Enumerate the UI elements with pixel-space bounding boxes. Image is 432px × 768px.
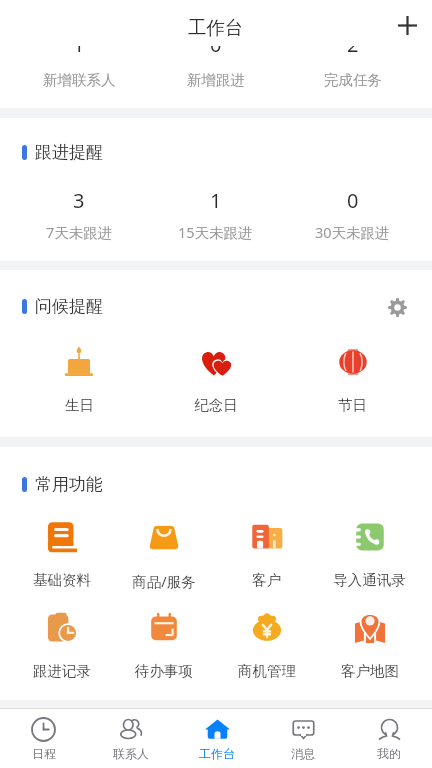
staticText: 商机管理 (238, 662, 296, 680)
button[interactable]: 待办事项 (113, 612, 215, 680)
button[interactable]: 3 (11, 187, 147, 242)
button[interactable]: 设置 (380, 290, 414, 324)
staticText: 生日 (65, 396, 94, 414)
button[interactable]: 1 (147, 187, 284, 242)
staticText: 1 (210, 187, 222, 214)
staticText: 消息 (291, 746, 315, 761)
staticText: 客户地图 (341, 662, 399, 680)
staticText: 商品/服务 (132, 571, 196, 591)
button[interactable]: 联系人 (87, 709, 174, 768)
staticText: 常用功能 (35, 474, 103, 495)
staticText: 0 (347, 187, 359, 214)
staticText: 跟进提醒 (35, 142, 103, 163)
staticText: 新增跟进 (187, 71, 245, 89)
button[interactable]: 导入通讯录 (318, 521, 421, 589)
button[interactable]: 跟进记录 (11, 612, 113, 680)
staticText: 跟进记录 (33, 662, 91, 680)
staticText: 客户 (252, 571, 281, 589)
button[interactable]: 日程 (0, 709, 87, 768)
button[interactable]: 1 (11, 46, 147, 89)
staticText: 新增联系人 (43, 71, 116, 89)
button[interactable]: 2 (284, 46, 421, 89)
button[interactable]: 新增 (389, 5, 425, 41)
button[interactable]: 生日 (11, 346, 147, 414)
button[interactable]: 客户 (215, 521, 318, 589)
staticText: 15天未跟进 (178, 222, 253, 242)
staticText: 7天未跟进 (46, 222, 113, 242)
staticText: 2 (347, 46, 359, 58)
staticText: 待办事项 (135, 662, 193, 680)
button[interactable]: 节日 (284, 346, 421, 414)
staticText: 基础资料 (33, 571, 91, 589)
staticText: 问候提醒 (35, 296, 103, 317)
button[interactable]: 商机管理 (215, 612, 318, 680)
button[interactable]: 消息 (260, 709, 346, 768)
button[interactable]: 0 (284, 187, 421, 242)
staticText: 工作台 (199, 746, 235, 761)
staticText: 纪念日 (194, 396, 238, 414)
staticText: 完成任务 (324, 71, 382, 89)
button[interactable]: 0 (147, 46, 284, 89)
button[interactable]: 基础资料 (11, 521, 113, 589)
button[interactable]: 商品/服务 (113, 521, 215, 591)
staticText: 3 (73, 187, 85, 214)
button[interactable]: 客户地图 (318, 612, 421, 680)
staticText: 节日 (338, 396, 367, 414)
staticText: 日程 (32, 746, 56, 761)
staticText: 1 (73, 46, 85, 58)
staticText: 0 (210, 46, 222, 58)
button[interactable]: 工作台 (174, 709, 260, 768)
staticText: 我的 (377, 746, 401, 761)
staticText: 工作台 (188, 16, 244, 39)
staticText: 联系人 (113, 746, 149, 761)
button[interactable]: 我的 (346, 709, 432, 768)
staticText: 导入通讯录 (333, 571, 406, 589)
button[interactable]: 纪念日 (147, 346, 284, 414)
staticText: 30天未跟进 (315, 222, 390, 242)
